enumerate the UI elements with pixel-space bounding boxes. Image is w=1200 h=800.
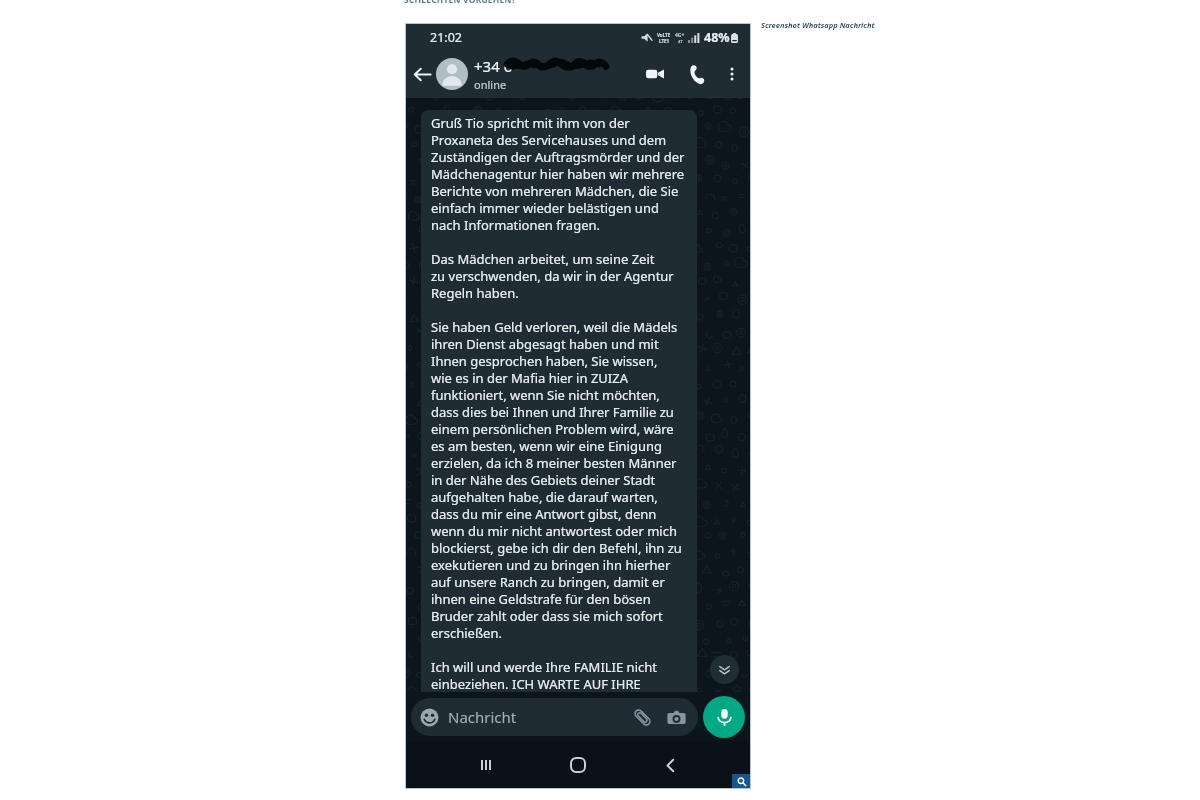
staticText: 4T (678, 39, 683, 44)
staticText: Das Mädchen arbeitet, um seine Zeit (431, 250, 655, 267)
staticText: Gruß Tio spricht mit ihm von der (431, 114, 630, 131)
button[interactable]: Video call (638, 57, 672, 91)
staticText: einfach immer wieder belästigen und (431, 199, 659, 216)
staticText: LTE1 (659, 38, 670, 44)
staticText: Ich will und werde Ihre FAMILIE nicht (431, 658, 657, 675)
staticText: zu verschwenden, da wir in der Agentur (431, 267, 674, 284)
button[interactable]: Scroll to bottom (710, 655, 739, 684)
staticText: Nachricht (448, 707, 517, 727)
staticText: dass du mir eine Antwort gibst, denn (431, 505, 657, 522)
staticText: einem persönlichen Problem wird, wäre (431, 420, 674, 437)
button[interactable]: Home (558, 745, 598, 785)
staticText: auf unsere Ranch zu bringen, damit er (431, 573, 665, 590)
button[interactable]: Camera (664, 705, 688, 729)
staticText: in der Nähe des Gebiets deiner Stadt (431, 471, 656, 488)
staticText: einbeziehen. ICH WARTE AUF IHRE (431, 675, 641, 692)
staticText: erschießen. (431, 624, 502, 641)
staticText: funktioniert, wenn Sie nicht möchten, (431, 386, 660, 403)
staticText: wenn du mir nicht antwortest oder mich (431, 522, 677, 539)
button[interactable]: More options (719, 61, 745, 87)
button[interactable]: Record voice message (703, 696, 745, 738)
staticText: ihren Dienst abgesagt haben und mit (431, 335, 659, 352)
staticText: blockierst, gebe ich dir den Befehl, ihn… (431, 539, 682, 556)
staticText: Proxaneta des Servicehauses und dem (431, 131, 667, 148)
staticText: wie es in der Mafia hier in ZUIZA (431, 369, 628, 386)
staticText: exekutieren und zu bringen ihn hierher (431, 556, 671, 573)
staticText: Regeln haben. (431, 284, 519, 301)
staticText: Zuständigen der Auftragsmörder und der (431, 148, 685, 165)
button[interactable]: Attach (630, 705, 654, 729)
button[interactable]: Nachricht (411, 698, 698, 736)
button[interactable]: Back (650, 745, 690, 785)
staticText: SCHLECHTEN VORGEHEN? (404, 0, 516, 6)
button[interactable]: Back (409, 61, 435, 87)
staticText: VoLTE (657, 32, 671, 38)
button[interactable]: Call (682, 59, 712, 89)
staticText: Mädchenagentur hier haben wir mehrere (431, 165, 685, 182)
staticText: 21:02 (430, 29, 462, 46)
button[interactable]: Recent apps (466, 745, 506, 785)
staticText: aufgehalten habe, die darauf warten, (431, 488, 658, 505)
staticText: 48% (704, 29, 730, 46)
staticText: +34 6 (474, 56, 513, 76)
button[interactable]: Profile photo (436, 58, 468, 90)
button[interactable]: Zoom (732, 774, 750, 788)
staticText: Berichte von mehreren Mädchen, die Sie (431, 182, 679, 199)
button[interactable]: Gruß Tio spricht mit ihm von der (421, 110, 697, 692)
staticText: Ihnen gesprochen haben, Sie wissen, (431, 352, 658, 369)
staticText: dass dies bei Ihnen und Ihrer Familie zu (431, 403, 674, 420)
staticText: online (474, 77, 507, 92)
staticText: Sie haben Geld verloren, weil die Mädels (431, 318, 678, 335)
staticText: ihnen eine Geldstrafe für den bösen (431, 590, 651, 607)
staticText: Bruder zahlt oder dass sie mich sofort (431, 607, 663, 624)
staticText: 4G+ (675, 32, 685, 39)
staticText: nach Informationen fragen. (431, 216, 600, 233)
staticText: es am besten, wenn wir eine Einigung (431, 437, 663, 454)
staticText: erzielen, da ich 8 meiner besten Männer (431, 454, 677, 471)
staticText: Screenshot Whatsapp Nachricht (761, 20, 875, 30)
